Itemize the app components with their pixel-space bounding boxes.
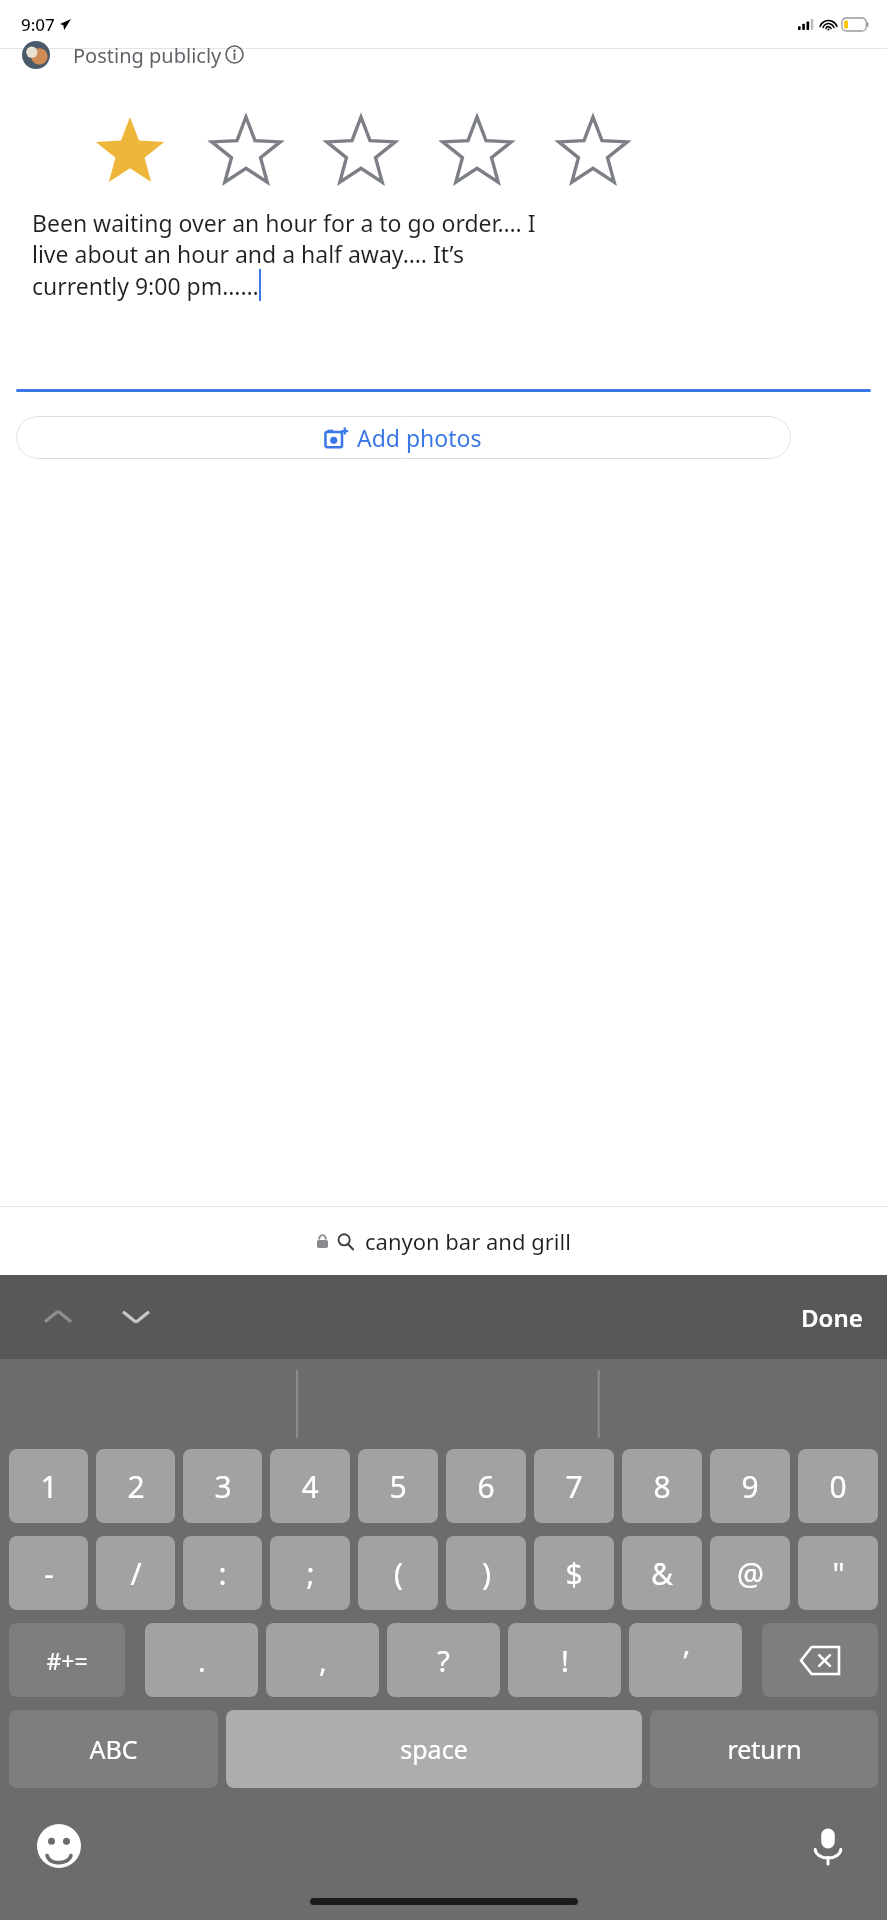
- button[interactable]: Next field: [108, 1289, 164, 1345]
- button[interactable]: .: [145, 1623, 258, 1697]
- button[interactable]: 5: [358, 1449, 438, 1523]
- staticText: :: [218, 1553, 227, 1594]
- staticText: ’: [683, 1641, 689, 1680]
- button[interactable]: Emoji: [30, 1817, 88, 1875]
- button[interactable]: (: [358, 1536, 438, 1610]
- button[interactable]: Done: [777, 1289, 887, 1346]
- button[interactable]: Dictation: [799, 1817, 857, 1875]
- staticText: space: [400, 1732, 468, 1766]
- button[interactable]: ABC: [9, 1710, 218, 1788]
- staticText: Posting publicly: [73, 42, 222, 69]
- staticText: !: [561, 1641, 569, 1680]
- button[interactable]: 6: [446, 1449, 526, 1523]
- staticText: 9:07: [21, 13, 55, 36]
- button[interactable]: Rate star: [86, 105, 172, 191]
- button[interactable]: return: [650, 1710, 878, 1788]
- staticText: #+=: [46, 1645, 88, 1676]
- staticText: (: [394, 1553, 403, 1594]
- staticText: ": [832, 1553, 845, 1594]
- button[interactable]: Posting publicly: [0, 49, 887, 79]
- button[interactable]: &: [622, 1536, 702, 1610]
- button[interactable]: ’: [629, 1623, 742, 1697]
- button[interactable]: Rate star: [258, 105, 344, 191]
- button[interactable]: Previous field: [30, 1289, 86, 1345]
- staticText: &: [651, 1553, 673, 1594]
- button[interactable]: 3: [183, 1449, 262, 1523]
- button[interactable]: #+=: [9, 1623, 125, 1697]
- staticText: 3: [214, 1466, 232, 1507]
- button[interactable]: canyon bar and grill: [0, 1207, 887, 1275]
- staticText: @: [737, 1553, 764, 1594]
- button[interactable]: 8: [622, 1449, 702, 1523]
- button[interactable]: ;: [270, 1536, 350, 1610]
- button[interactable]: Rate star: [172, 105, 258, 191]
- button[interactable]: ): [446, 1536, 526, 1610]
- staticText: $: [565, 1553, 583, 1594]
- staticText: .: [198, 1641, 206, 1680]
- button[interactable]: Backspace: [762, 1623, 878, 1697]
- button[interactable]: 1: [9, 1449, 88, 1523]
- staticText: 0: [829, 1466, 847, 1507]
- staticText: 8: [653, 1466, 671, 1507]
- button[interactable]: Rate star: [344, 105, 430, 191]
- staticText: return: [727, 1732, 802, 1766]
- staticText: ): [482, 1553, 491, 1594]
- staticText: ;: [306, 1553, 315, 1594]
- staticText: live about an hour and a half away…. It’…: [32, 238, 464, 269]
- staticText: ?: [437, 1641, 450, 1680]
- staticText: currently 9:00 pm……: [32, 270, 259, 301]
- staticText: Been waiting over an hour for a to go or…: [32, 207, 536, 238]
- button[interactable]: ": [798, 1536, 878, 1610]
- staticText: /: [130, 1553, 142, 1594]
- staticText: -: [44, 1553, 54, 1594]
- button[interactable]: !: [508, 1623, 621, 1697]
- button[interactable]: 0: [798, 1449, 878, 1523]
- button[interactable]: 2: [96, 1449, 175, 1523]
- staticText: 4: [301, 1466, 319, 1507]
- staticText: 6: [477, 1466, 495, 1507]
- staticText: canyon bar and grill: [365, 1226, 571, 1256]
- button[interactable]: 4: [270, 1449, 350, 1523]
- button[interactable]: @: [710, 1536, 790, 1610]
- staticText: ABC: [89, 1732, 138, 1766]
- button[interactable]: Been waiting over an hour for a to go or…: [16, 201, 871, 389]
- staticText: Add photos: [357, 422, 482, 453]
- button[interactable]: 9: [710, 1449, 790, 1523]
- button[interactable]: ?: [387, 1623, 500, 1697]
- staticText: 5: [389, 1466, 407, 1507]
- button[interactable]: /: [96, 1536, 175, 1610]
- button[interactable]: $: [534, 1536, 614, 1610]
- button[interactable]: space: [226, 1710, 642, 1788]
- button[interactable]: -: [9, 1536, 88, 1610]
- button[interactable]: 7: [534, 1449, 614, 1523]
- staticText: 7: [565, 1466, 583, 1507]
- button[interactable]: Add photos: [16, 416, 791, 459]
- staticText: Done: [801, 1301, 863, 1334]
- staticText: 9: [741, 1466, 759, 1507]
- button[interactable]: :: [183, 1536, 262, 1610]
- button[interactable]: ,: [266, 1623, 379, 1697]
- staticText: 1: [40, 1466, 58, 1507]
- staticText: ,: [319, 1641, 327, 1680]
- staticText: 2: [127, 1466, 145, 1507]
